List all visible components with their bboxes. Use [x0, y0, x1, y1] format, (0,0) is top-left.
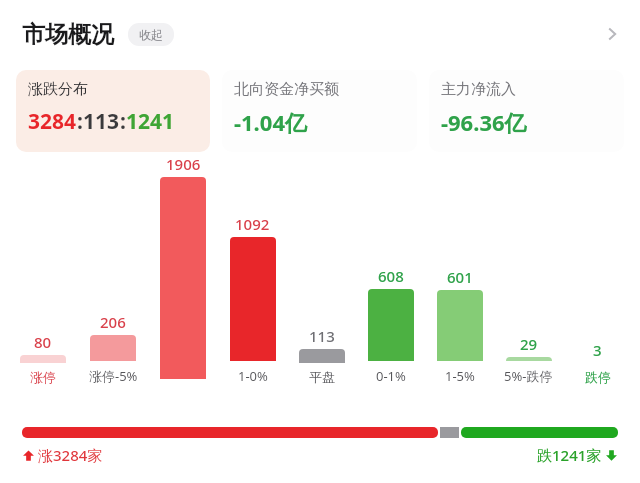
staticText: 3284 [28, 107, 77, 136]
staticText: 206 [100, 312, 126, 332]
staticText: : [120, 107, 126, 136]
button[interactable]: 涨跌分布 [16, 70, 210, 152]
staticText: 113 [309, 326, 335, 346]
staticText: 涨停-5% [89, 367, 138, 385]
staticText: 5%-跌停 [504, 367, 553, 385]
staticText: 涨3284家 [38, 445, 103, 465]
staticText: 1-5% [445, 367, 475, 385]
staticText: 113 [83, 107, 120, 136]
staticText: 1-0% [238, 367, 268, 385]
staticText: -1.04亿 [234, 107, 307, 137]
staticText: 平盘 [309, 369, 335, 385]
staticText: 29 [520, 334, 538, 354]
staticText: 80 [34, 332, 52, 352]
staticText: 0-1% [376, 367, 406, 385]
button[interactable]: 收起 [128, 23, 174, 46]
staticText: 跌1241家 [537, 445, 602, 465]
staticText: 涨停 [30, 369, 56, 385]
button[interactable]: 更多 [590, 12, 634, 56]
staticText: 3 [593, 340, 602, 360]
staticText: 1092 [235, 214, 270, 234]
staticText: 608 [378, 266, 404, 286]
button[interactable]: 主力净流入 [429, 70, 624, 152]
staticText: 市场概况 [22, 20, 114, 49]
staticText: 1906 [166, 154, 201, 174]
staticText: 跌停 [585, 369, 611, 385]
staticText: 北向资金净买额 [234, 80, 339, 99]
staticText: -96.36亿 [441, 107, 527, 137]
button[interactable]: 北向资金净买额 [222, 70, 417, 152]
staticText: 主力净流入 [441, 80, 516, 99]
staticText: 涨跌分布 [28, 80, 88, 99]
staticText: : [77, 107, 83, 136]
staticText: 1241 [126, 107, 175, 136]
staticText: 601 [447, 267, 473, 287]
staticText: 收起 [139, 27, 163, 42]
